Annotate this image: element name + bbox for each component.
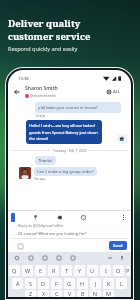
staticText: O: [116, 267, 121, 274]
button[interactable]: U: [87, 265, 98, 276]
staticText: A: [16, 280, 20, 287]
button[interactable]: Keyboard action: [13, 254, 21, 262]
staticText: G: [67, 280, 72, 287]
button[interactable]: H: [77, 278, 88, 289]
button[interactable]: M: [103, 290, 114, 297]
button[interactable]: S: [25, 278, 36, 289]
staticText: 5m ago: [34, 177, 46, 181]
staticText: W: [25, 267, 31, 274]
staticText: Of course! What are you looking for?: [18, 231, 87, 236]
staticText: R: [52, 267, 56, 274]
button[interactable]: N: [90, 290, 101, 297]
staticText: Respond quickly and easily: [8, 45, 78, 52]
staticText: N: [93, 290, 98, 297]
staticText: I: [105, 267, 107, 274]
button[interactable]: ALL: [106, 87, 122, 97]
button[interactable]: K: [103, 278, 114, 289]
staticText: E: [39, 267, 43, 274]
button[interactable]: Q: [9, 265, 20, 276]
staticText: U: [90, 267, 95, 274]
button[interactable]: Keyboard action: [27, 254, 35, 262]
staticText: Hello! I wish—we buy all our baked goods…: [29, 123, 99, 141]
staticText: X: [42, 290, 46, 297]
button[interactable]: More: [106, 254, 114, 262]
button[interactable]: More options: [119, 213, 127, 221]
button[interactable]: Pin: [31, 213, 39, 221]
staticText: Thanks!: [38, 158, 53, 163]
button[interactable]: P: [126, 265, 130, 276]
button[interactable]: I: [100, 265, 111, 276]
staticText: S: [29, 280, 33, 287]
staticText: Reply as @OhSproutCoffee: [18, 223, 64, 228]
button[interactable]: W: [22, 265, 33, 276]
button[interactable]: Keyboard action: [41, 254, 49, 262]
staticText: C: [55, 290, 59, 297]
staticText: @sharonsmith: [30, 93, 56, 98]
button[interactable]: C: [51, 290, 62, 297]
button[interactable]: Keyboard action: [69, 254, 77, 262]
button[interactable]: Keyboard action: [55, 254, 63, 262]
button[interactable]: Y: [74, 265, 85, 276]
button[interactable]: F: [51, 278, 62, 289]
staticText: D: [41, 280, 46, 287]
button[interactable]: Voice input: [118, 254, 126, 262]
staticText: Y: [78, 267, 82, 274]
staticText: K: [107, 280, 111, 287]
staticText: 13:38: [18, 76, 29, 82]
staticText: Can I make a big group order?: [37, 169, 94, 174]
staticText: P: [126, 267, 130, 274]
button[interactable]: X: [38, 290, 49, 297]
staticText: customer service: [8, 30, 91, 43]
staticText: J: [95, 280, 97, 287]
staticText: Send: [113, 243, 123, 248]
button[interactable]: V: [64, 290, 75, 297]
button[interactable]: L: [116, 278, 127, 289]
staticText: M: [106, 290, 111, 297]
button[interactable]: O: [113, 265, 124, 276]
button[interactable]: Send: [109, 241, 127, 250]
staticText: V: [68, 290, 72, 297]
staticText: H: [80, 280, 85, 287]
button[interactable]: A: [12, 278, 23, 289]
button[interactable]: G: [64, 278, 75, 289]
staticText: T: [65, 267, 69, 274]
staticText: L: [120, 280, 123, 287]
staticText: Sharon Smith: [25, 85, 58, 92]
button[interactable]: Insert emoji: [16, 242, 24, 250]
button[interactable]: Tag: [55, 213, 63, 221]
staticText: Z: [29, 290, 33, 297]
button[interactable]: Emoji: [79, 213, 87, 221]
staticText: y'all bake your scones in house?: [38, 105, 98, 110]
button[interactable]: R: [48, 265, 59, 276]
button[interactable]: B: [77, 290, 88, 297]
button[interactable]: Back: [11, 86, 22, 97]
staticText: Tuesday · Feb 7, 2023: [50, 148, 88, 153]
staticText: F: [55, 280, 58, 287]
button[interactable]: D: [38, 278, 49, 289]
staticText: 1d ago: [35, 114, 46, 118]
button[interactable]: Z: [25, 290, 36, 297]
staticText: ALL: [113, 89, 121, 95]
button[interactable]: J: [90, 278, 101, 289]
staticText: B: [81, 290, 85, 297]
staticText: Deliver quality: [8, 17, 81, 30]
button[interactable]: E: [35, 265, 46, 276]
button[interactable]: T: [61, 265, 72, 276]
staticText: Q: [12, 267, 17, 274]
